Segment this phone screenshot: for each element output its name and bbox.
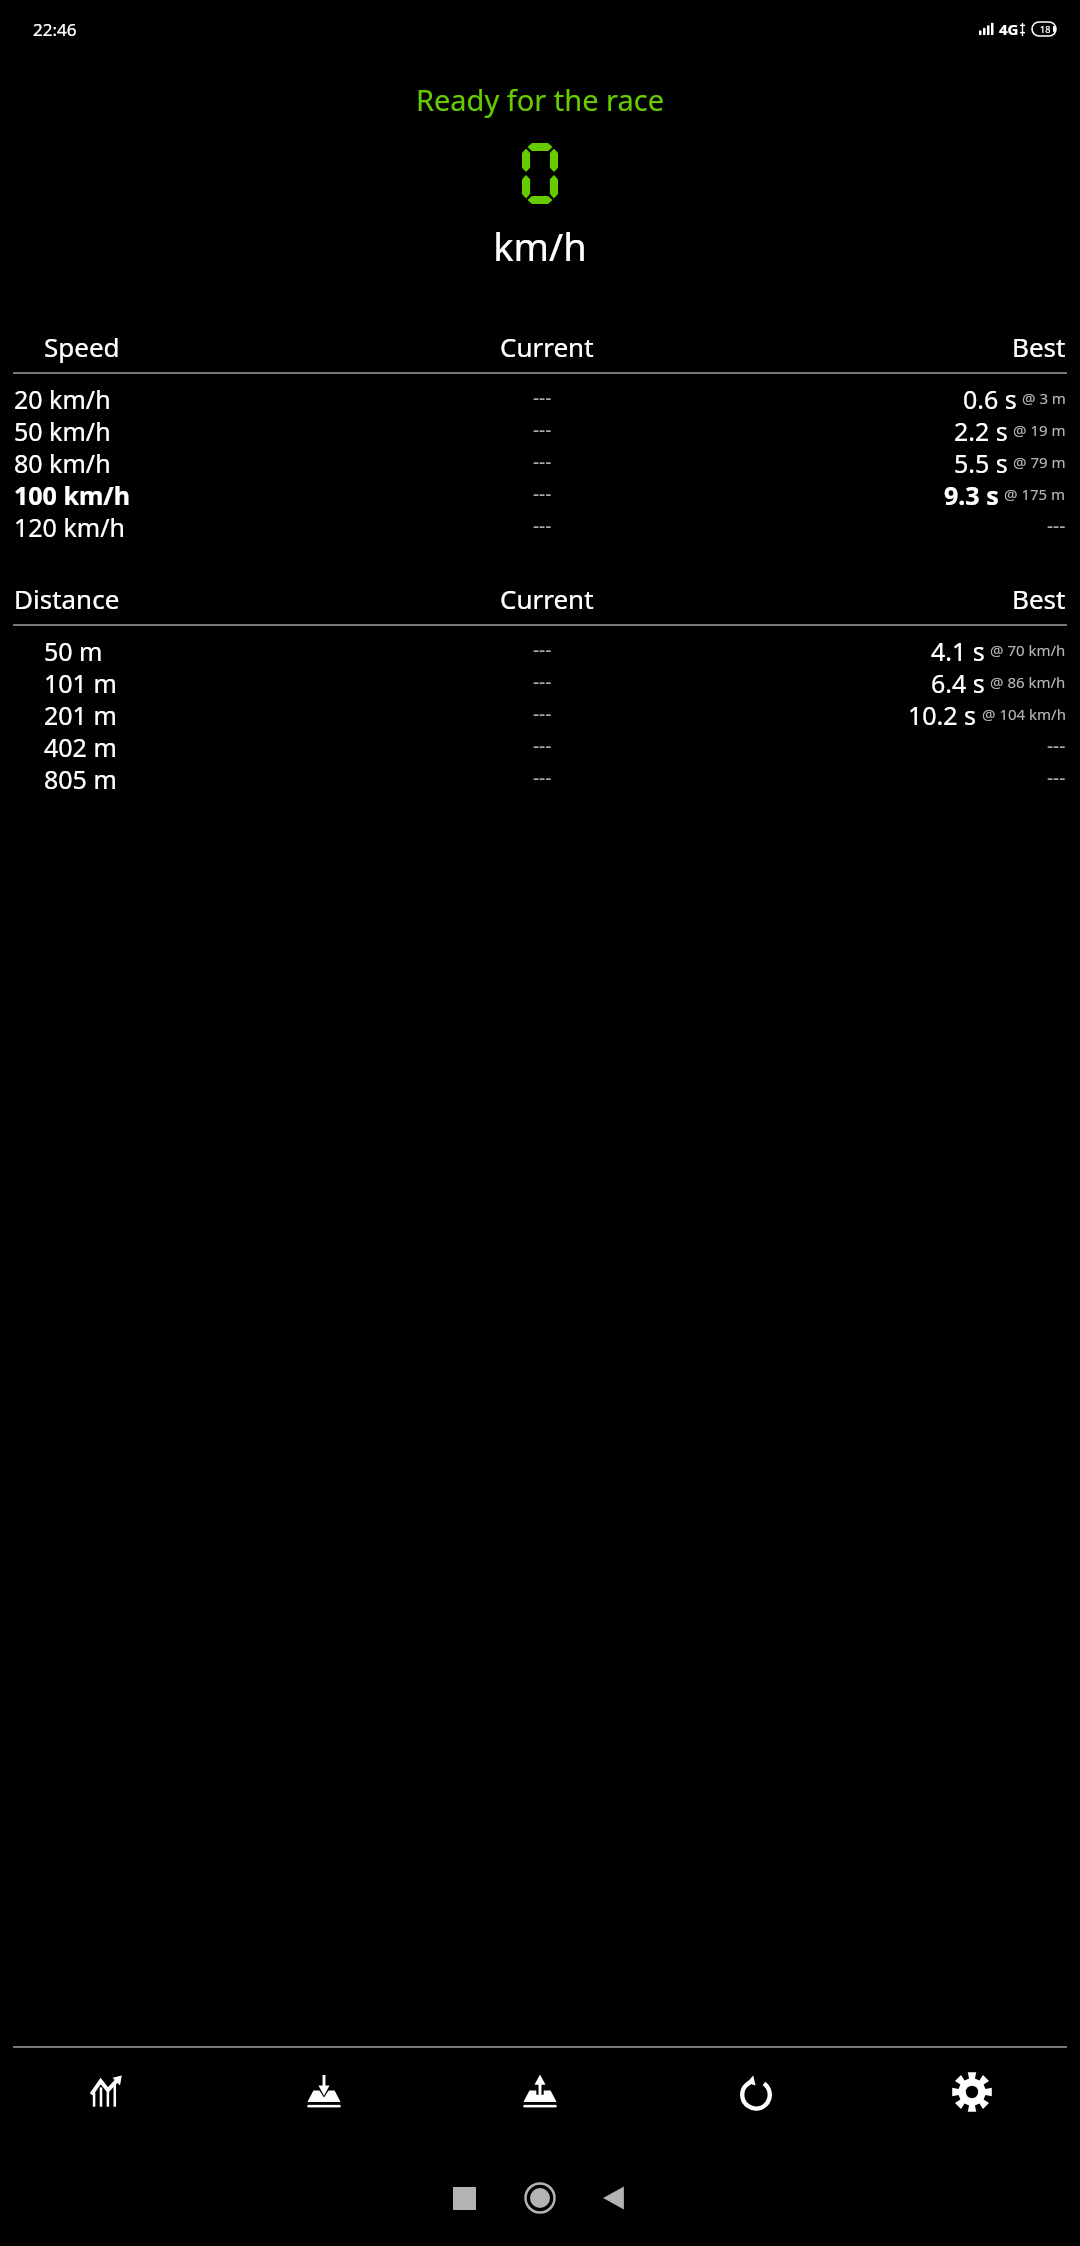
staticText: 20 km/h [14, 382, 111, 414]
button[interactable]: 50 m [0, 634, 1080, 666]
staticText: 18 [1040, 23, 1051, 35]
button[interactable]: Recents [434, 2168, 494, 2228]
staticText: 9.3 s [944, 478, 999, 510]
staticText: @ 79 m [1013, 452, 1066, 472]
staticText: @ 104 km/h [982, 704, 1066, 724]
button[interactable]: Import [216, 2048, 432, 2136]
staticText: --- [533, 701, 552, 727]
staticText: --- [533, 733, 552, 759]
button[interactable]: 120 km/h [0, 510, 1080, 542]
staticText: --- [533, 385, 552, 411]
staticText: 2.2 s [954, 414, 1008, 446]
button[interactable]: 20 km/h [0, 382, 1080, 414]
staticText: 100 km/h [14, 478, 130, 510]
staticText: 80 km/h [14, 446, 111, 478]
staticText: --- [533, 481, 552, 507]
staticText: 120 km/h [14, 510, 125, 542]
button[interactable]: 100 km/h [0, 478, 1080, 510]
staticText: 22:46 [33, 18, 77, 41]
button[interactable]: 50 km/h [0, 414, 1080, 446]
staticText: @ 70 km/h [990, 640, 1066, 660]
button[interactable]: Back [584, 2168, 644, 2228]
staticText: Current [500, 581, 594, 616]
button[interactable]: 201 m [0, 698, 1080, 730]
staticText: --- [533, 765, 552, 791]
staticText: --- [533, 417, 552, 443]
staticText: Ready for the race [0, 80, 1080, 119]
staticText: 50 km/h [14, 414, 111, 446]
staticText: Best [1012, 581, 1066, 616]
button[interactable]: Settings [864, 2048, 1080, 2136]
staticText: 5.5 s [954, 446, 1008, 478]
staticText: Best [1012, 329, 1066, 364]
button[interactable]: Statistics [0, 2048, 216, 2136]
staticText: 201 m [44, 698, 117, 730]
button[interactable]: 805 m [0, 762, 1080, 794]
staticText: 402 m [44, 730, 117, 762]
staticText: --- [533, 637, 552, 663]
staticText: 4G [999, 19, 1019, 39]
staticText: 10.2 s [908, 698, 977, 730]
staticText: 4.1 s [931, 634, 985, 666]
staticText: 6.4 s [931, 666, 985, 698]
staticText: 50 m [44, 634, 103, 666]
staticText: --- [533, 669, 552, 695]
staticText: --- [1047, 765, 1066, 791]
staticText: Current [500, 329, 594, 364]
staticText: Distance [14, 581, 120, 616]
staticText: --- [533, 449, 552, 475]
button[interactable]: 402 m [0, 730, 1080, 762]
button[interactable]: 80 km/h [0, 446, 1080, 478]
button[interactable]: Home [510, 2168, 570, 2228]
staticText: Speed [44, 329, 120, 364]
staticText: @ 175 m [1004, 484, 1066, 504]
staticText: --- [1047, 513, 1066, 539]
staticText: @ 19 m [1013, 420, 1066, 440]
staticText: 0.6 s [963, 382, 1017, 414]
button[interactable]: 101 m [0, 666, 1080, 698]
staticText: @ 86 km/h [990, 672, 1066, 692]
staticText: 101 m [44, 666, 117, 698]
button[interactable]: Export [432, 2048, 648, 2136]
button[interactable]: Reset [648, 2048, 864, 2136]
staticText: @ 3 m [1022, 388, 1066, 408]
staticText: --- [533, 513, 552, 539]
staticText: 805 m [44, 762, 117, 794]
staticText: km/h [0, 220, 1080, 272]
staticText: --- [1047, 733, 1066, 759]
